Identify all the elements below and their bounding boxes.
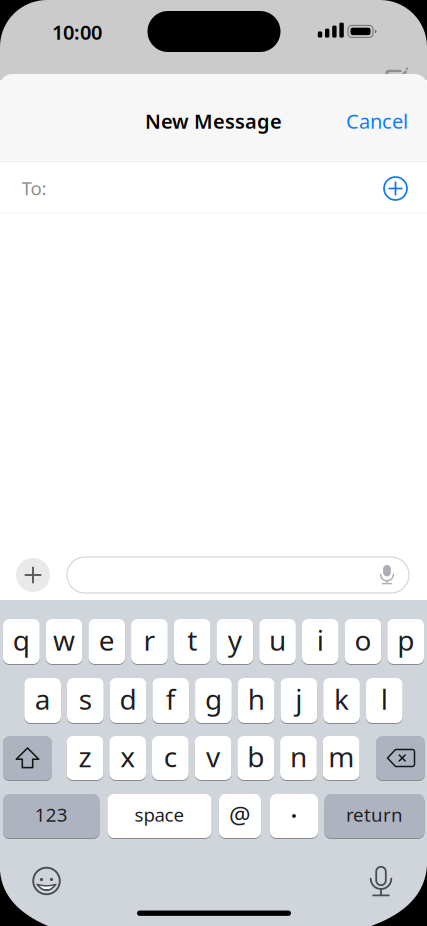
button[interactable]: k	[323, 677, 360, 723]
staticText: t	[187, 621, 197, 659]
button[interactable]: l	[366, 677, 403, 723]
staticText: x	[120, 738, 135, 775]
button[interactable]: r	[131, 618, 168, 664]
staticText: return	[346, 802, 403, 827]
staticText: @	[229, 799, 251, 830]
staticText: New Message	[145, 108, 282, 134]
button[interactable]: m	[323, 735, 359, 780]
button[interactable]: c	[152, 735, 189, 780]
staticText: i	[317, 621, 324, 659]
button[interactable]: v	[195, 735, 231, 780]
button[interactable]: n	[280, 735, 317, 780]
staticText: o	[354, 621, 371, 659]
staticText: v	[206, 738, 220, 775]
staticText: a	[35, 680, 51, 718]
staticText: f	[166, 680, 176, 718]
button[interactable]: a	[24, 677, 61, 723]
staticText: space	[134, 802, 184, 827]
button[interactable]: Shift	[3, 735, 52, 780]
staticText: To:	[21, 176, 46, 200]
staticText: d	[120, 680, 137, 718]
staticText: l	[381, 680, 388, 718]
button[interactable]: d	[110, 677, 146, 723]
button[interactable]: t	[174, 618, 210, 664]
staticText: j	[295, 680, 302, 718]
button[interactable]: y	[216, 618, 253, 664]
button[interactable]: Delete	[376, 735, 425, 780]
button[interactable]: j	[280, 677, 317, 723]
button[interactable]: u	[259, 618, 296, 664]
button[interactable]: Emoji	[24, 859, 68, 903]
button[interactable]: @	[219, 793, 261, 838]
button[interactable]: w	[46, 618, 82, 664]
staticText: Cancel	[346, 108, 408, 134]
staticText: n	[290, 738, 307, 775]
button[interactable]: Dictation	[359, 858, 403, 902]
button[interactable]: p	[387, 618, 424, 664]
staticText: b	[247, 738, 264, 775]
staticText: z	[78, 738, 91, 775]
staticText: s	[79, 680, 92, 718]
button[interactable]: Add Attachment	[16, 558, 50, 592]
staticText: r	[143, 621, 155, 659]
button[interactable]: g	[195, 677, 232, 723]
button[interactable]: f	[152, 677, 189, 723]
button[interactable]: q	[3, 618, 40, 664]
staticText: 123	[35, 802, 68, 827]
staticText: g	[205, 680, 222, 718]
staticText: p	[397, 621, 414, 659]
staticText: u	[269, 621, 286, 659]
staticText: q	[13, 621, 30, 659]
staticText: h	[248, 680, 265, 718]
button[interactable]: o	[345, 618, 381, 664]
staticText: 10:00	[52, 19, 102, 45]
button[interactable]: To	[0, 162, 427, 212]
staticText: k	[334, 680, 349, 718]
button[interactable]: Period	[270, 793, 318, 838]
button[interactable]: z	[67, 735, 103, 780]
button[interactable]: i	[302, 618, 339, 664]
button[interactable]: return	[324, 793, 424, 838]
button[interactable]: e	[88, 618, 125, 664]
button[interactable]: Add Contact	[377, 170, 413, 206]
staticText: m	[328, 738, 354, 775]
button[interactable]: s	[67, 677, 104, 723]
button[interactable]: Message text field	[67, 557, 409, 593]
button[interactable]: 123	[3, 793, 99, 838]
staticText: y	[228, 621, 242, 659]
staticText: w	[53, 621, 75, 659]
button[interactable]: x	[109, 735, 146, 780]
staticText: e	[99, 621, 115, 659]
button[interactable]: Cancel	[318, 99, 408, 143]
button[interactable]: space	[107, 793, 211, 838]
button[interactable]: b	[237, 735, 274, 780]
staticText: c	[164, 738, 177, 775]
button[interactable]: h	[238, 677, 274, 723]
